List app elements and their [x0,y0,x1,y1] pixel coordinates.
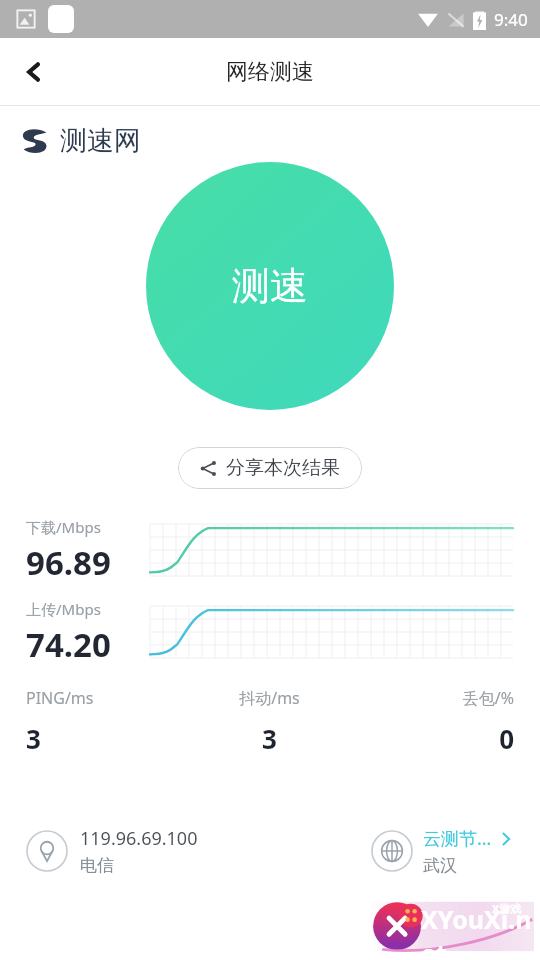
button[interactable]: Back [10,48,58,96]
staticText: 3 [188,721,351,756]
staticText: 74.20 [26,622,111,665]
staticText: 上传/Mbps [26,599,101,619]
staticText: 武汉 [423,855,457,876]
staticText: 测速网 [60,124,141,158]
button[interactable]: 测速 [146,162,394,410]
button[interactable]: 抖动/ms [188,687,351,756]
staticText: 119.96.69.100 [80,826,198,851]
button[interactable]: 119.96.69.100 [26,826,371,876]
staticText: 3 [26,721,188,756]
staticText: 丢包/% [351,687,514,709]
staticText: 下载/Mbps [26,517,101,537]
staticText: 电信 [80,855,114,876]
staticText: 9:40 [494,8,528,31]
staticText: 网络测速 [226,58,314,86]
button[interactable]: PING/ms [26,687,188,756]
staticText: 0 [351,721,514,756]
button[interactable]: 丢包/% [351,687,514,756]
button[interactable]: 分享本次结果 [178,447,362,489]
staticText: XYouXi.net [421,902,534,954]
staticText: X游戏 [492,901,522,916]
staticText: 测速 [232,262,308,310]
button[interactable]: 云测节… [371,826,514,876]
staticText: 云测节… [423,826,492,851]
staticText: 96.89 [26,540,111,583]
staticText: PING/ms [26,687,188,709]
staticText: 抖动/ms [188,687,351,709]
staticText: 分享本次结果 [226,456,340,480]
